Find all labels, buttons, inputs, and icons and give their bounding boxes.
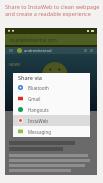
staticText: Share via [18,74,42,81]
staticText: Gmail [28,96,41,102]
button[interactable]: Messaging [13,126,90,137]
staticText: InstaWeb [28,118,49,124]
staticText: Hangouts [28,107,49,113]
staticText: Messaging [28,129,51,135]
staticText: androidcentral [24,48,52,53]
staticText: and create a readable experience [5,10,91,17]
staticText: m.androidcentral.com [10,37,57,43]
button[interactable]: Gmail [13,93,90,104]
staticText: Share to InstaWeb to clean webpage [5,3,100,10]
button[interactable]: Bluetooth [13,82,90,93]
button[interactable]: Hangouts [13,104,90,115]
button[interactable]: InstaWeb [13,115,90,126]
staticText: Bluetooth [28,85,49,91]
staticText: NEWS [9,62,21,67]
